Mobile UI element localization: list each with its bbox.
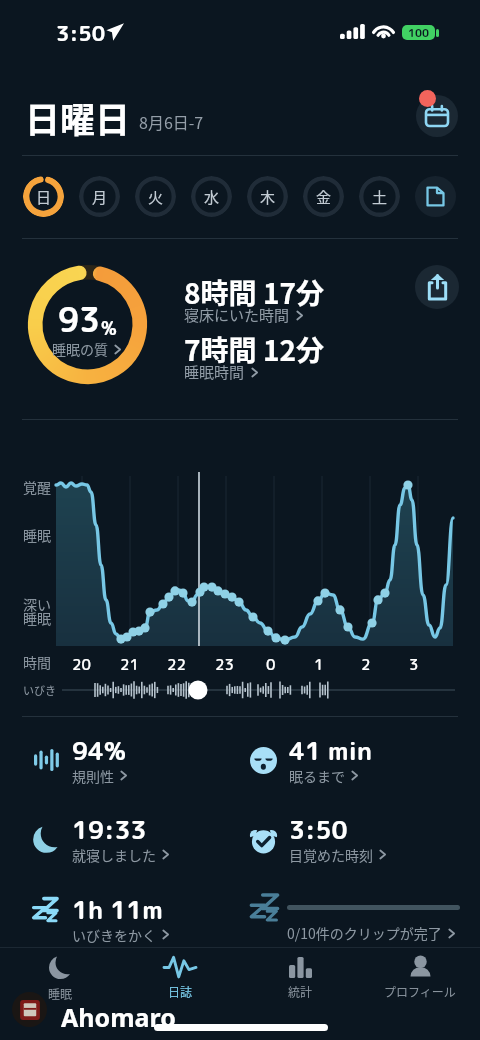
staticText: 3:50 bbox=[289, 812, 348, 847]
staticText: 7時間 12分 bbox=[184, 329, 324, 370]
staticText: 20 bbox=[72, 654, 91, 675]
button[interactable]: 日誌 bbox=[120, 952, 240, 1004]
button[interactable]: 月 bbox=[79, 176, 120, 217]
button[interactable]: 睡眠 bbox=[0, 952, 120, 1004]
staticText: Ahomaro bbox=[61, 1000, 176, 1034]
staticText: 21 bbox=[120, 654, 139, 675]
button[interactable]: 19:33 bbox=[20, 812, 258, 866]
button[interactable]: 8時間 17分 bbox=[184, 272, 324, 335]
button[interactable]: 火 bbox=[135, 176, 176, 217]
button[interactable]: 木 bbox=[247, 176, 288, 217]
button[interactable]: Calendar bbox=[416, 95, 458, 137]
staticText: 睡眠 bbox=[48, 985, 73, 1002]
staticText: 統計 bbox=[288, 983, 313, 1000]
staticText: 0/10件のクリップが完了 bbox=[287, 923, 442, 943]
button[interactable]: 0/10件のクリップが完了 bbox=[240, 885, 480, 945]
staticText: 寝床にいた時間 bbox=[184, 304, 290, 326]
button[interactable]: 1h 11m bbox=[20, 892, 258, 946]
staticText: 睡眠 bbox=[23, 525, 51, 545]
staticText: 3 bbox=[409, 654, 419, 675]
staticText: プロフィール bbox=[384, 983, 456, 1000]
staticText: 93 bbox=[58, 297, 101, 343]
staticText: 覚醒 bbox=[23, 477, 51, 497]
staticText: 月 bbox=[92, 186, 108, 208]
staticText: 23 bbox=[215, 654, 234, 675]
button[interactable]: 41 min bbox=[237, 733, 475, 787]
staticText: 規則性 bbox=[72, 766, 114, 785]
staticText: 金 bbox=[316, 186, 332, 208]
staticText: 3:50 bbox=[56, 18, 106, 47]
staticText: 1 bbox=[314, 654, 324, 675]
button[interactable]: 水 bbox=[191, 176, 232, 217]
staticText: 就寝しました bbox=[72, 845, 156, 864]
staticText: いびきをかく bbox=[72, 925, 156, 944]
staticText: 深い 睡眠 bbox=[23, 594, 51, 628]
staticText: 100 bbox=[408, 25, 430, 40]
staticText: 1h 11m bbox=[72, 892, 163, 927]
button[interactable]: 7時間 12分 bbox=[184, 329, 324, 392]
staticText: 睡眠時間 bbox=[184, 361, 245, 383]
staticText: % bbox=[101, 316, 117, 341]
staticText: 日曜日 bbox=[25, 92, 131, 138]
staticText: 41 min bbox=[289, 733, 372, 768]
button[interactable]: 日 bbox=[23, 176, 64, 217]
staticText: 0 bbox=[266, 654, 276, 675]
button[interactable]: Share bbox=[415, 265, 459, 309]
staticText: 19:33 bbox=[72, 812, 147, 847]
staticText: 眠るまで bbox=[289, 766, 345, 785]
button[interactable]: 金 bbox=[303, 176, 344, 217]
staticText: 土 bbox=[372, 186, 388, 208]
staticText: 22 bbox=[167, 654, 186, 675]
staticText: いびき bbox=[23, 682, 56, 698]
staticText: 時間 bbox=[23, 652, 51, 672]
staticText: 木 bbox=[260, 186, 276, 208]
staticText: 目覚めた時刻 bbox=[289, 845, 373, 864]
staticText: 火 bbox=[148, 186, 164, 208]
staticText: 8月6日-7 bbox=[139, 110, 204, 133]
staticText: 8時間 17分 bbox=[184, 272, 324, 313]
staticText: 睡眠の質 bbox=[52, 339, 108, 359]
button[interactable]: 94% bbox=[20, 733, 258, 787]
button[interactable]: 統計 bbox=[240, 952, 360, 1004]
staticText: 94% bbox=[72, 733, 126, 768]
staticText: 日誌 bbox=[168, 983, 193, 1000]
staticText: 日 bbox=[36, 186, 52, 208]
button[interactable]: 93 bbox=[52, 297, 123, 363]
button[interactable]: 土 bbox=[359, 176, 400, 217]
button[interactable]: Notes bbox=[415, 176, 456, 217]
staticText: 2 bbox=[361, 654, 371, 675]
staticText: 水 bbox=[204, 186, 220, 208]
button[interactable]: 3:50 bbox=[237, 812, 475, 866]
button[interactable]: プロフィール bbox=[360, 952, 480, 1004]
